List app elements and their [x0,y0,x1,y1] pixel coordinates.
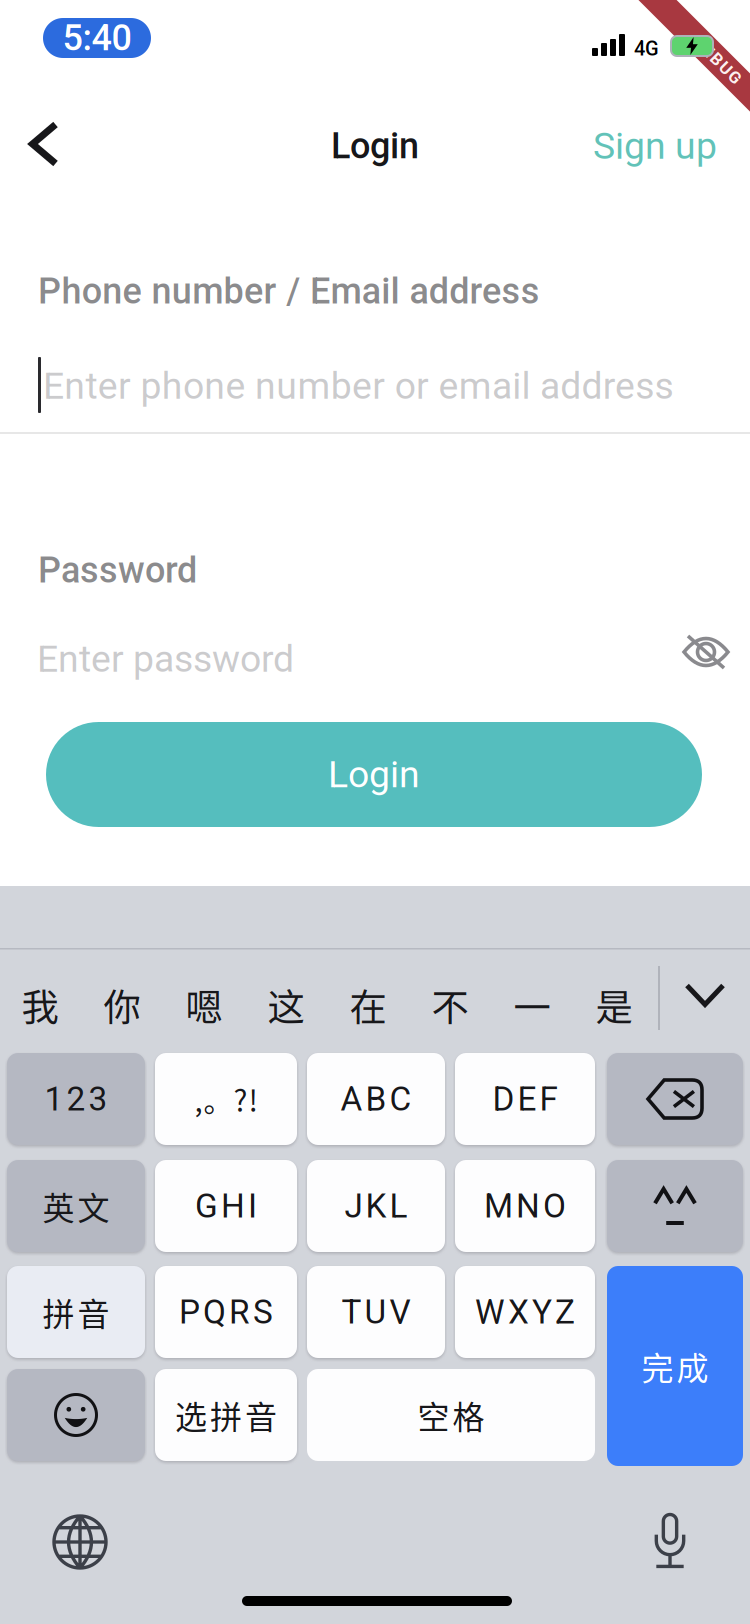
staticText: GHI [195,1186,257,1226]
staticText: 一 [513,978,550,1032]
staticText: 123 [44,1079,107,1119]
button[interactable]: MNO [455,1160,595,1252]
staticText: 拼音 [42,1289,109,1335]
staticText: 空格 [417,1392,484,1438]
staticText: 嗯 [185,978,222,1032]
button[interactable]: TUV [307,1266,445,1358]
staticText: 你 [103,978,140,1032]
staticText: WXYZ [475,1292,575,1332]
button[interactable]: 拼音 [7,1266,145,1358]
button[interactable]: DEF [455,1053,595,1145]
staticText: 不 [431,978,468,1032]
staticText: 完成 [641,1343,708,1389]
button[interactable]: 英文 [7,1160,145,1252]
button[interactable] [7,1369,145,1461]
button[interactable]: Sign up [531,115,717,177]
staticText: 在 [349,978,386,1032]
staticText: Enter phone number or email address [43,364,673,408]
staticText: 是 [595,978,632,1032]
button[interactable]: 选拼音 [155,1369,297,1461]
staticText: TUV [341,1292,410,1332]
button[interactable] [607,1160,743,1252]
button[interactable]: 空格 [307,1369,595,1461]
staticText: Phone number / Email address [38,270,540,312]
button[interactable]: Hide keyboard [661,949,749,1041]
staticText: 英文 [42,1183,109,1229]
button[interactable]: Show password [663,609,749,695]
button[interactable]: WXYZ [455,1266,595,1358]
button[interactable]: ABC [307,1053,445,1145]
staticText: ABC [340,1079,411,1119]
staticText: DEBUG [687,50,748,70]
staticText: Enter password [37,637,294,681]
button[interactable]: PQRS [155,1266,297,1358]
button[interactable]: GHI [155,1160,297,1252]
staticText: Login [331,125,419,167]
staticText: JKL [344,1186,407,1226]
staticText: PQRS [179,1292,273,1332]
staticText: 这 [267,978,304,1032]
button[interactable]: 完成 [607,1266,743,1466]
staticText: DEF [492,1079,557,1119]
button[interactable]: Back [6,106,82,182]
staticText: 5:40 [62,17,131,59]
button[interactable]: Dictation [622,1493,718,1589]
staticText: MNO [484,1186,566,1226]
staticText: 4G [634,37,659,60]
staticText: Sign up [593,124,717,168]
button[interactable]: ,。?! [155,1053,297,1145]
staticText: Password [38,549,197,591]
staticText: ,。?! [194,1078,257,1120]
staticText: 我 [21,978,58,1032]
button[interactable] [607,1053,743,1145]
staticText: Login [328,753,420,796]
staticText: 选拼音 [175,1392,277,1438]
button[interactable]: 123 [7,1053,145,1145]
button[interactable]: Login [46,722,702,827]
button[interactable]: Switch keyboard [32,1494,128,1590]
button[interactable]: JKL [307,1160,445,1252]
